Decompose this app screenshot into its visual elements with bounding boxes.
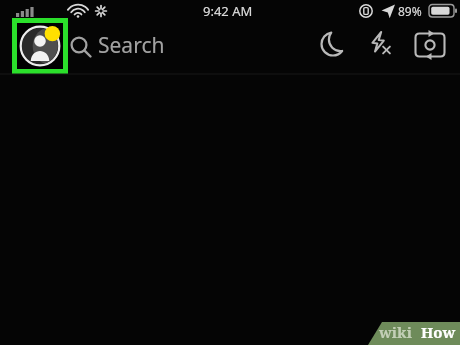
button[interactable]: Flash off [360, 24, 400, 64]
button[interactable]: Flip camera [409, 24, 451, 66]
button[interactable]: Night mode [313, 24, 353, 64]
staticText: wiki [379, 322, 412, 342]
button[interactable]: Profile [12, 18, 68, 74]
staticText: 89% [398, 3, 422, 19]
staticText: Search [98, 31, 165, 60]
button[interactable]: Search [70, 22, 235, 70]
staticText: 9:42 AM [203, 2, 253, 20]
staticText: How [421, 322, 456, 342]
